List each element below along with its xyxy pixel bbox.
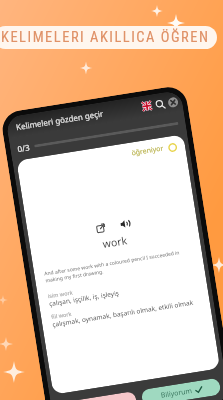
button[interactable]: Close <box>166 96 179 108</box>
button[interactable]: Biliyorum <box>141 378 221 400</box>
button[interactable]: Listen <box>116 215 132 231</box>
staticText: Biliyorum <box>160 386 193 400</box>
button[interactable]: Search <box>153 98 166 110</box>
button[interactable]: Bilmiyorum <box>58 391 137 400</box>
staticText: work <box>30 222 199 262</box>
button[interactable]: Change language <box>141 100 153 112</box>
staticText: çalışan, işçilik, iş, işleyiş <box>48 288 120 308</box>
staticText: 0/3 <box>17 141 31 154</box>
staticText: çalışmak, oynamak, başarılı olmak, etkil… <box>52 298 194 329</box>
staticText: fiil work <box>51 310 72 320</box>
staticText: Kelimeleri gözden geçir <box>15 107 105 132</box>
staticText: KELIMELERI AKILLICA ÖĞREN <box>1 29 210 46</box>
staticText: öğreniyor <box>131 143 165 158</box>
staticText: And after some work with a coloured penc… <box>44 247 193 284</box>
button[interactable]: Open in new <box>93 220 108 235</box>
staticText: isim work <box>47 288 73 299</box>
